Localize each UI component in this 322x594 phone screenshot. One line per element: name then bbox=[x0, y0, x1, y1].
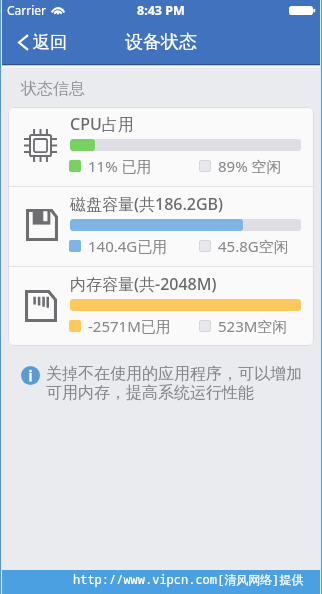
staticText: 关掉不在使用的应用程序，可以增加可用内存，提高系统运行性能 bbox=[46, 364, 309, 403]
other: Disk bbox=[26, 209, 58, 241]
staticText: 磁盘容量(共186.2GB) bbox=[70, 193, 224, 215]
staticText: 8:43 PM bbox=[137, 2, 185, 19]
button[interactable]: CPU bbox=[8, 107, 314, 186]
staticText: 45.8G空闲 bbox=[218, 236, 289, 256]
staticText: 设备状态 bbox=[125, 31, 197, 54]
staticText: http://www.vipcn.com[清风网络]提供 bbox=[73, 571, 304, 587]
staticText: 返回 bbox=[33, 32, 67, 53]
staticText: Carrier bbox=[7, 2, 47, 18]
staticText: 内存容量(共-2048M) bbox=[70, 273, 217, 295]
other: Memory bbox=[25, 290, 57, 322]
staticText: CPU占用 bbox=[70, 113, 134, 135]
staticText: 523M空闲 bbox=[218, 316, 288, 336]
button[interactable]: 返回 bbox=[0, 26, 77, 59]
staticText: 11% 已用 bbox=[88, 156, 152, 176]
other: CPU bbox=[24, 129, 57, 162]
staticText: 140.4G已用 bbox=[88, 236, 168, 256]
staticText: -2571M已用 bbox=[88, 316, 171, 336]
button[interactable]: Memory bbox=[8, 267, 314, 346]
button[interactable]: Disk bbox=[8, 187, 314, 266]
staticText: 89% 空闲 bbox=[218, 156, 282, 176]
staticText: 状态信息 bbox=[21, 79, 85, 99]
